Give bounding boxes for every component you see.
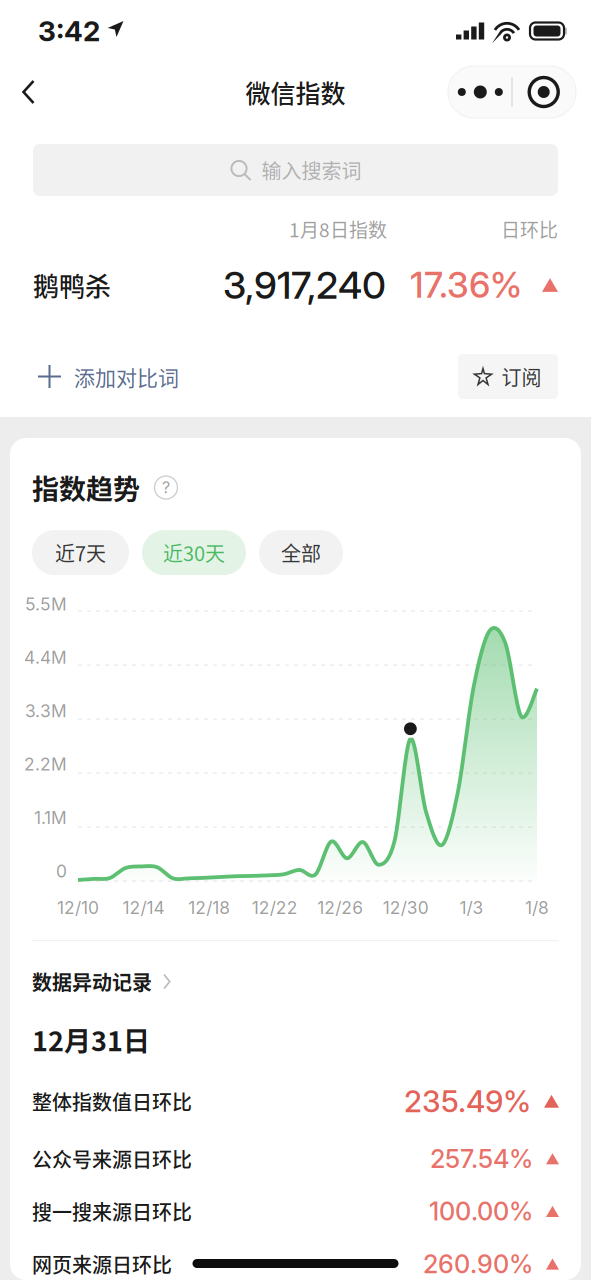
staticText: 日环比: [501, 215, 558, 243]
staticText: 12/26: [317, 897, 363, 918]
staticText: 12/22: [252, 897, 298, 918]
staticText: 全部: [281, 538, 321, 567]
staticText: 12/10: [57, 897, 99, 918]
staticText: 0: [56, 861, 67, 882]
staticText: 2.2M: [24, 754, 67, 775]
staticText: 近30天: [163, 538, 225, 567]
button[interactable]: Help: [153, 474, 179, 500]
button[interactable]: 输入搜索词: [33, 144, 558, 196]
staticText: 1月8日指数: [289, 215, 387, 243]
staticText: 近7天: [55, 538, 106, 567]
staticText: 网页来源日环比: [32, 1250, 172, 1279]
button[interactable]: 数据异动记录: [10, 963, 581, 1000]
staticText: 鹅鸭杀: [33, 266, 111, 304]
button[interactable]: 添加对比词: [38, 354, 179, 399]
staticText: 100.00%: [429, 1196, 533, 1227]
staticText: 3,917,240: [223, 262, 386, 308]
staticText: 12/18: [188, 897, 230, 918]
staticText: 公众号来源日环比: [32, 1144, 192, 1173]
staticText: 1/3: [459, 897, 483, 918]
staticText: 4.4M: [24, 647, 67, 668]
staticText: 12/30: [383, 897, 429, 918]
staticText: 257.54%: [430, 1143, 533, 1174]
staticText: 3.3M: [25, 700, 67, 721]
button[interactable]: 近7天: [32, 530, 129, 575]
staticText: 输入搜索词: [261, 155, 361, 184]
staticText: 1.1M: [34, 807, 67, 828]
staticText: 微信指数: [245, 74, 345, 110]
staticText: 12月31日: [32, 1020, 150, 1059]
button[interactable]: 全部: [259, 530, 343, 575]
staticText: 260.90%: [423, 1249, 533, 1279]
staticText: 订阅: [502, 362, 542, 391]
staticText: ?: [162, 478, 170, 497]
button[interactable]: More options and close: [448, 66, 576, 118]
staticText: 添加对比词: [74, 361, 179, 392]
staticText: 3:42: [38, 14, 100, 48]
staticText: 5.5M: [25, 594, 67, 615]
staticText: 指数趋势: [32, 468, 140, 507]
staticText: 整体指数值日环比: [32, 1087, 192, 1116]
staticText: 17.36%: [410, 264, 522, 306]
staticText: 235.49%: [404, 1083, 531, 1119]
staticText: 数据异动记录: [32, 967, 152, 996]
staticText: 12/14: [123, 897, 165, 918]
button[interactable]: Back: [0, 64, 58, 120]
staticText: 搜一搜来源日环比: [32, 1197, 192, 1226]
staticText: 1/8: [525, 897, 549, 918]
button[interactable]: 订阅: [458, 354, 558, 399]
button[interactable]: 近30天: [142, 530, 246, 575]
